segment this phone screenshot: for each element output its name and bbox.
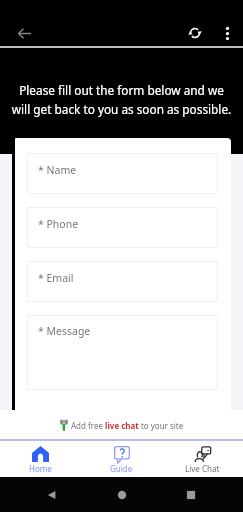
button[interactable]: Home (0, 441, 81, 477)
button[interactable]: Refresh (182, 20, 208, 46)
button[interactable]: * Message (27, 315, 218, 390)
button[interactable]: Live Chat (162, 441, 243, 477)
other: Live chat promo (60, 419, 68, 431)
button[interactable]: Guide (81, 441, 162, 477)
staticText: Live Chat (185, 463, 220, 474)
button[interactable]: More options (214, 20, 240, 46)
staticText: Please fill out the form below and we wi… (0, 82, 243, 117)
other: Recents (185, 489, 197, 501)
staticText: Add free live chat to your site (71, 420, 184, 431)
staticText: * Message (38, 324, 91, 338)
button[interactable]: * Name (27, 153, 218, 194)
staticText: Guide (110, 463, 133, 474)
other: Back (46, 489, 58, 501)
staticText: * Name (38, 163, 77, 177)
button[interactable]: Back (11, 20, 37, 46)
staticText: * Email (38, 271, 74, 285)
button[interactable]: Live chat promo (60, 419, 184, 431)
staticText: * Phone (38, 217, 79, 231)
staticText: Home (29, 463, 52, 474)
button[interactable]: * Email (27, 261, 218, 302)
button[interactable]: * Phone (27, 207, 218, 248)
other: Home (116, 489, 128, 501)
